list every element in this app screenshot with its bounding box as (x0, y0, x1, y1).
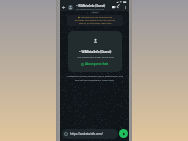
staticText: ~ WABetaInfo (Guest) (79, 50, 112, 54)
staticText: About guest chats (85, 62, 109, 66)
button[interactable]: About guest chats (80, 62, 110, 66)
button[interactable]: https://wabetainfo.com/ (62, 129, 118, 139)
button[interactable]: ~ WABetaInfo (Guest) (68, 31, 122, 72)
staticText: Not registered with WhatsApp (76, 8, 105, 11)
staticText: You invited this guest to the chat (77, 55, 114, 58)
button[interactable]: Contact photo (68, 5, 73, 10)
button[interactable]: Send (119, 129, 128, 138)
staticText: Today (92, 11, 98, 14)
button[interactable]: Voice call (117, 4, 123, 10)
staticText: https://wabetainfo.com/ (70, 132, 103, 136)
button[interactable]: Video call (111, 4, 117, 10)
staticText: ~WABetaInfo (Guest) disabled calls or at… (66, 75, 123, 81)
button[interactable]: More options (123, 5, 128, 10)
button[interactable]: Today (90, 11, 100, 14)
staticText: 🔒 Messages and calls are end-to-end encr… (73, 16, 117, 25)
staticText: ~ WABetaInfo (Guest) (76, 4, 106, 8)
button[interactable]: 🔒 Messages and calls are end-to-end encr… (67, 15, 123, 26)
button[interactable]: Back (61, 5, 66, 10)
